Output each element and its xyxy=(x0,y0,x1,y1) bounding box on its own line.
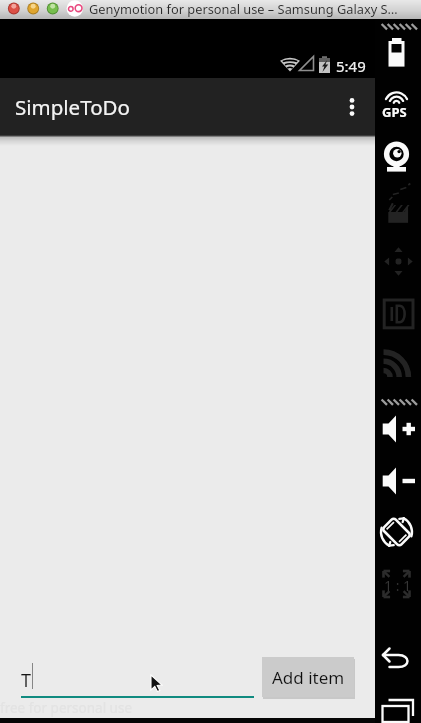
button[interactable]: Recent apps xyxy=(375,689,421,723)
button[interactable]: Identifiers xyxy=(375,291,421,333)
button[interactable]: Back xyxy=(375,638,421,680)
button[interactable]: Volume down xyxy=(375,460,421,502)
button[interactable]: Add item xyxy=(262,657,354,697)
button[interactable]: Screen recorder xyxy=(375,184,421,226)
staticText: 5:49 xyxy=(336,56,366,76)
button[interactable]: More options xyxy=(329,78,375,135)
button[interactable]: Camera xyxy=(375,133,421,175)
button[interactable]: Zoom 1:1 xyxy=(375,563,421,605)
button[interactable]: GPS xyxy=(375,87,421,123)
button[interactable]: Rotate controls xyxy=(375,238,421,280)
staticText: Add item xyxy=(272,666,345,689)
button[interactable]: T xyxy=(21,660,254,696)
staticText: Genymotion for personal use – Samsung Ga… xyxy=(89,0,398,17)
staticText: 1 : 1 xyxy=(384,576,412,595)
button[interactable]: Volume up xyxy=(375,408,421,450)
staticText: GPS xyxy=(382,103,407,121)
button[interactable]: Rotate screen xyxy=(375,511,421,553)
staticText: T xyxy=(21,668,32,693)
button[interactable]: Battery xyxy=(375,33,421,65)
staticText: SimpleToDo xyxy=(15,93,130,121)
button[interactable]: Network xyxy=(375,342,421,384)
